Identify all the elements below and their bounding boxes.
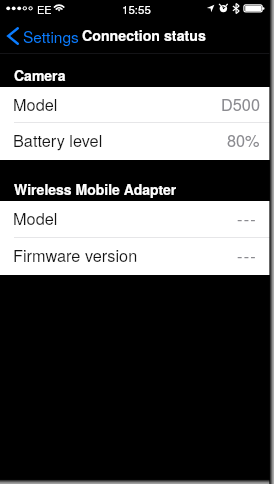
button[interactable]: Back xyxy=(0,21,85,51)
button[interactable]: Battery level xyxy=(0,123,274,160)
staticText: 80% xyxy=(227,128,260,151)
staticText: Wireless Mobile Adapter xyxy=(14,179,177,199)
staticText: Model xyxy=(13,206,58,229)
staticText: D500 xyxy=(221,92,260,115)
staticText: EE xyxy=(37,1,52,17)
staticText: --- xyxy=(237,243,257,266)
other: Back xyxy=(7,27,19,45)
staticText: Camera xyxy=(14,65,66,85)
staticText: Battery level xyxy=(13,128,103,151)
staticText: Settings xyxy=(23,25,79,47)
button[interactable]: Model xyxy=(0,201,274,238)
staticText: Model xyxy=(13,92,58,115)
staticText: Firmware version xyxy=(13,243,138,266)
staticText: Connection status xyxy=(82,25,206,45)
staticText: 15:55 xyxy=(122,1,151,17)
button[interactable]: Model xyxy=(0,87,274,123)
button[interactable]: Firmware version xyxy=(0,238,274,275)
staticText: --- xyxy=(237,206,257,229)
